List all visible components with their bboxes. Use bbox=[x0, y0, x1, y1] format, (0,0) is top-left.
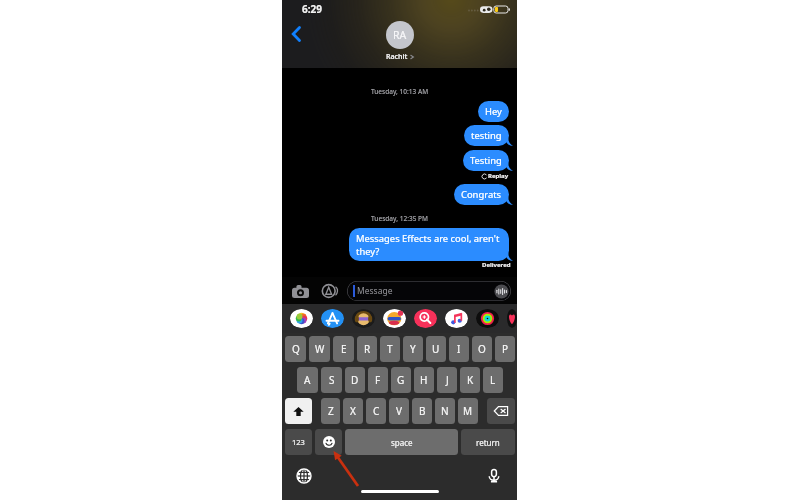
button[interactable]: T bbox=[380, 336, 400, 362]
staticText: Z bbox=[328, 404, 334, 418]
button[interactable]: I bbox=[449, 336, 469, 362]
staticText: L bbox=[490, 373, 496, 387]
button[interactable]: Messages Effects are cool, aren't they? bbox=[349, 228, 509, 261]
staticText: A bbox=[304, 373, 311, 387]
button[interactable]: Q bbox=[285, 336, 306, 362]
staticText: Hey bbox=[485, 105, 502, 118]
staticText: return bbox=[476, 437, 500, 448]
button[interactable]: App Store bbox=[321, 309, 344, 328]
staticText: Testing bbox=[470, 154, 502, 167]
button[interactable]: O bbox=[472, 336, 492, 362]
button[interactable]: H bbox=[414, 367, 434, 393]
button[interactable]: space bbox=[345, 429, 458, 455]
button[interactable]: Message bbox=[347, 281, 511, 301]
staticText: W bbox=[315, 342, 325, 356]
button[interactable]: F bbox=[368, 367, 388, 393]
button[interactable]: Image search bbox=[414, 309, 437, 328]
staticText: H bbox=[420, 373, 428, 387]
button[interactable]: U bbox=[426, 336, 446, 362]
staticText: R bbox=[364, 342, 371, 356]
button[interactable]: L bbox=[483, 367, 503, 393]
button[interactable]: testing bbox=[464, 125, 509, 146]
button[interactable]: R bbox=[357, 336, 377, 362]
button[interactable]: Emoji bbox=[315, 429, 342, 455]
staticText: D bbox=[351, 373, 359, 387]
staticText: K bbox=[467, 373, 474, 387]
staticText: F bbox=[375, 373, 381, 387]
staticText: Replay bbox=[488, 172, 509, 180]
button[interactable]: Backspace bbox=[487, 398, 515, 424]
staticText: I bbox=[457, 342, 461, 356]
button[interactable]: N bbox=[435, 398, 455, 424]
staticText: Rachit bbox=[386, 52, 408, 62]
button[interactable]: Z bbox=[321, 398, 340, 424]
staticText: S bbox=[329, 373, 335, 387]
button[interactable]: Back bbox=[283, 21, 309, 47]
button[interactable]: Fitness bbox=[476, 309, 499, 328]
staticText: 123 bbox=[292, 437, 305, 447]
button[interactable]: V bbox=[389, 398, 409, 424]
staticText: Messages Effects are cool, aren't they? bbox=[356, 232, 502, 257]
button[interactable]: More bbox=[507, 309, 517, 328]
staticText: RA bbox=[393, 28, 407, 42]
staticText: 6:29 bbox=[302, 2, 322, 16]
button[interactable]: RA bbox=[386, 21, 414, 62]
button[interactable]: A bbox=[297, 367, 318, 393]
button[interactable]: App Store bbox=[320, 281, 340, 301]
button[interactable]: Stickers bbox=[383, 309, 406, 328]
staticText: Y bbox=[410, 342, 416, 356]
button[interactable]: P bbox=[495, 336, 515, 362]
button[interactable]: Shift bbox=[285, 398, 312, 424]
staticText: P bbox=[502, 342, 509, 356]
staticText: V bbox=[396, 404, 402, 418]
button[interactable]: Photos bbox=[290, 309, 313, 328]
button[interactable]: 123 bbox=[285, 429, 312, 455]
staticText: B bbox=[419, 404, 426, 418]
button[interactable]: S bbox=[321, 367, 342, 393]
staticText: O bbox=[478, 342, 486, 356]
staticText: Tuesday, 10:13 AM bbox=[282, 87, 517, 96]
staticText: Q bbox=[292, 342, 300, 356]
button[interactable]: W bbox=[309, 336, 330, 362]
button[interactable]: Y bbox=[403, 336, 423, 362]
staticText: Tuesday, 12:35 PM bbox=[282, 214, 517, 223]
button[interactable]: Testing bbox=[463, 150, 509, 171]
staticText: X bbox=[350, 404, 356, 418]
button[interactable]: B bbox=[412, 398, 432, 424]
staticText: Congrats bbox=[461, 188, 502, 201]
button[interactable]: Dictate bbox=[485, 467, 503, 485]
button[interactable]: Hey bbox=[478, 101, 509, 122]
button[interactable]: M bbox=[458, 398, 478, 424]
staticText: Message bbox=[357, 285, 393, 297]
button[interactable]: G bbox=[391, 367, 411, 393]
staticText: T bbox=[387, 342, 393, 356]
button[interactable]: Congrats bbox=[454, 184, 509, 205]
staticText: space bbox=[391, 437, 413, 448]
staticText: testing bbox=[471, 129, 502, 142]
button[interactable]: J bbox=[437, 367, 457, 393]
button[interactable]: Music bbox=[445, 309, 468, 328]
button[interactable]: D bbox=[345, 367, 365, 393]
button[interactable]: return bbox=[461, 429, 515, 455]
staticText: G bbox=[397, 373, 405, 387]
staticText: M bbox=[463, 404, 473, 418]
button[interactable]: Camera bbox=[290, 281, 310, 301]
staticText: U bbox=[432, 342, 440, 356]
staticText: J bbox=[446, 373, 449, 387]
button[interactable]: X bbox=[343, 398, 363, 424]
staticText: C bbox=[373, 404, 380, 418]
staticText: E bbox=[341, 342, 347, 356]
button[interactable]: E bbox=[333, 336, 354, 362]
staticText: Delivered bbox=[482, 261, 511, 269]
button[interactable]: C bbox=[366, 398, 386, 424]
button[interactable]: K bbox=[460, 367, 480, 393]
button[interactable]: Change keyboard bbox=[295, 467, 313, 485]
staticText: N bbox=[441, 404, 449, 418]
button[interactable]: Memoji bbox=[352, 309, 375, 328]
